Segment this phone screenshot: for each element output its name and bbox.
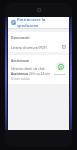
staticText: Lettera di vettura (PDF) <box>11 45 47 49</box>
staticText: Scrivici subito <box>11 77 30 81</box>
staticText: Documenti <box>11 35 30 40</box>
button[interactable]: Menu <box>10 19 17 26</box>
button[interactable]: WhatsApp <box>54 62 66 75</box>
button[interactable]: Lettera di vettura (PDF) <box>11 44 66 49</box>
staticText: WhatsApp <box>54 72 66 75</box>
staticText: Assistenza <box>11 58 29 63</box>
other: Download <box>61 44 66 49</box>
staticText: 24 h su 24 ore <box>29 72 51 76</box>
staticText: Assistenza <box>11 72 28 76</box>
staticText: Rintracciare la spedizione <box>17 17 67 28</box>
staticText: Servizio clienti via chat <box>11 67 45 71</box>
